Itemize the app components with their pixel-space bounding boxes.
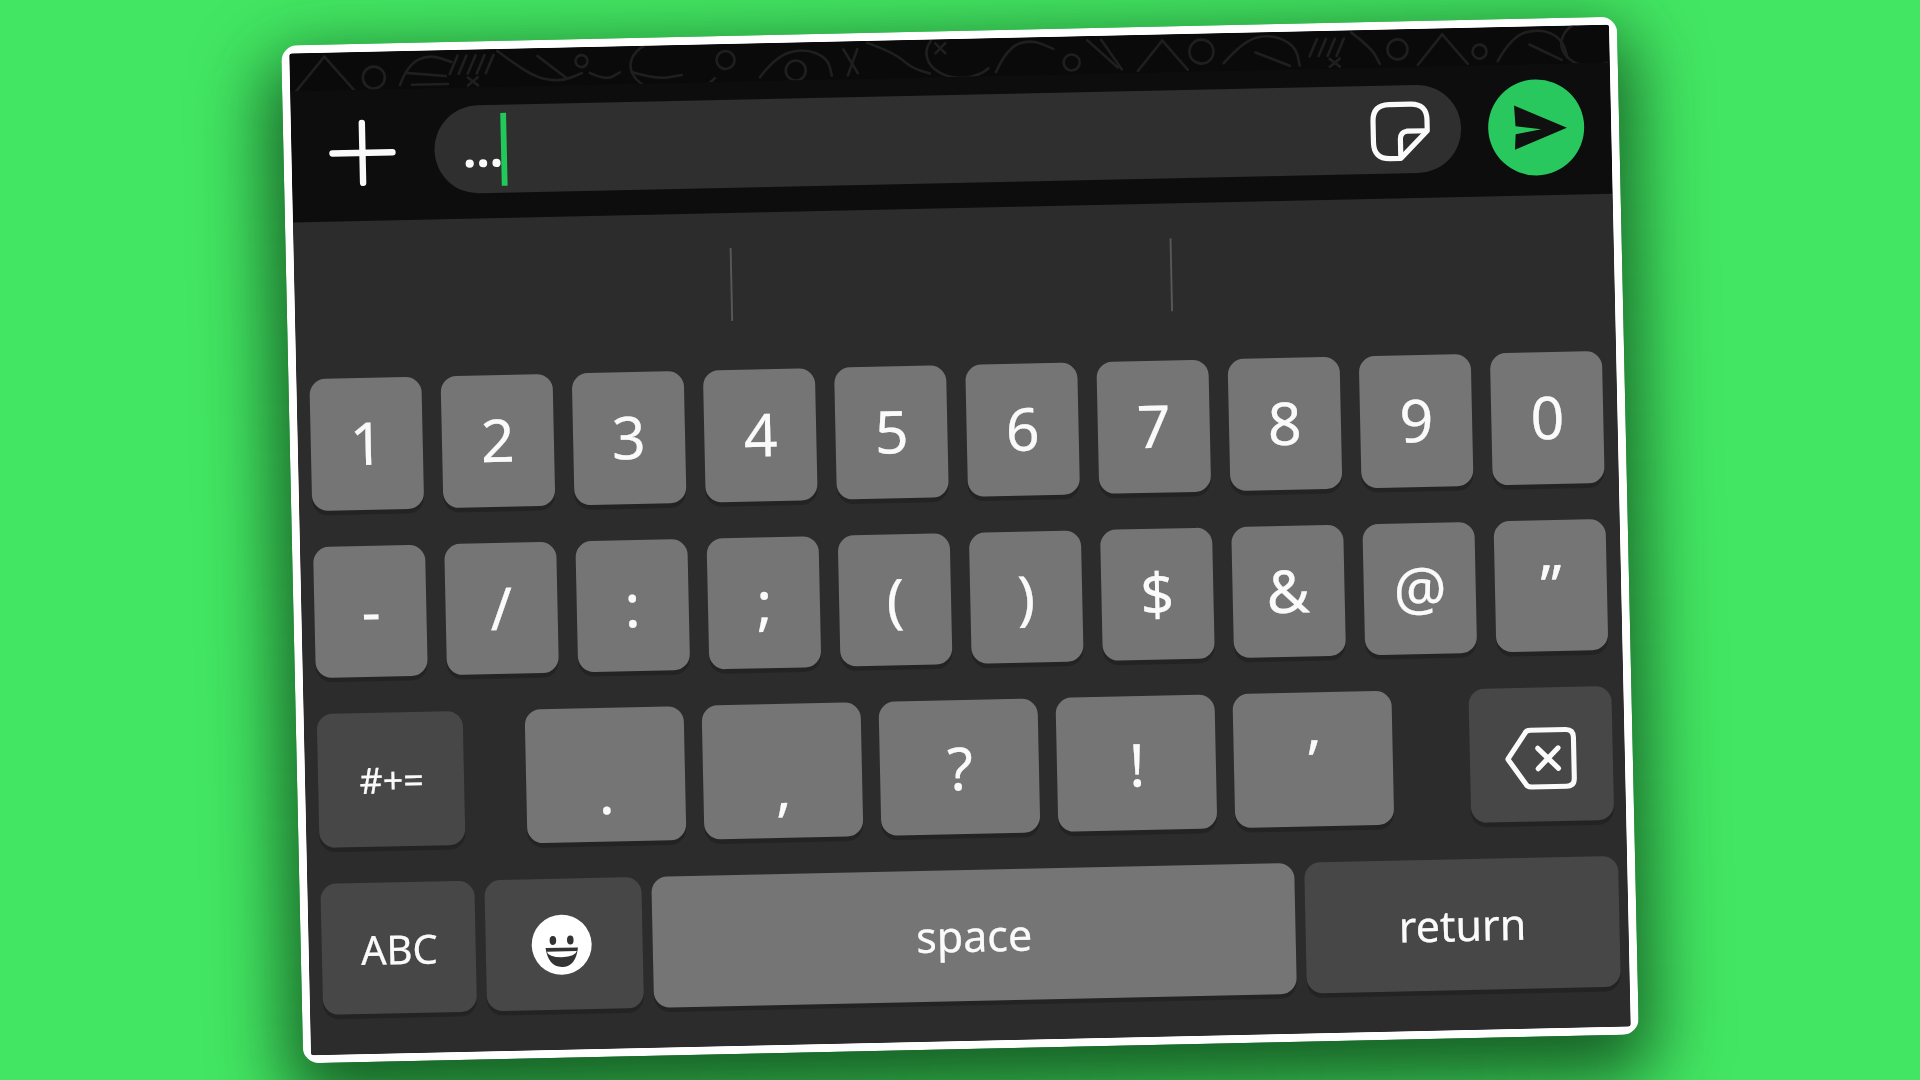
button[interactable]: &: [1231, 525, 1346, 658]
button[interactable]: Emoji: [484, 877, 644, 1011]
staticText: /: [489, 567, 513, 647]
button[interactable]: @: [1363, 522, 1478, 655]
staticText: space: [915, 904, 1033, 966]
button[interactable]: space: [651, 863, 1297, 1008]
button[interactable]: 0: [1490, 351, 1605, 485]
button[interactable]: Attach: [324, 114, 401, 192]
button[interactable]: #+=: [317, 711, 465, 848]
staticText: 5: [874, 390, 909, 471]
staticText: ,: [774, 747, 792, 827]
button[interactable]: 2: [440, 374, 555, 508]
button[interactable]: ABC: [320, 881, 477, 1015]
staticText: ): [1016, 555, 1036, 636]
staticText: 1: [349, 401, 385, 482]
button[interactable]: 3: [571, 371, 686, 505]
button[interactable]: ,: [701, 702, 863, 840]
staticText: ”: [1539, 544, 1563, 624]
staticText: (: [885, 558, 905, 639]
button[interactable]: 5: [834, 365, 949, 500]
button[interactable]: 4: [703, 368, 818, 502]
staticText: 4: [743, 393, 778, 474]
button[interactable]: (: [838, 533, 953, 667]
staticText: -: [360, 570, 381, 650]
staticText: return: [1398, 894, 1527, 956]
staticText: !: [1128, 723, 1146, 803]
button[interactable]: $: [1100, 527, 1215, 661]
staticText: ?: [946, 727, 974, 807]
staticText: 8: [1267, 382, 1302, 462]
staticText: ABC: [360, 920, 438, 976]
button[interactable]: Message input: [433, 84, 1462, 194]
button[interactable]: :: [575, 539, 690, 672]
button[interactable]: ;: [707, 536, 822, 669]
button[interactable]: Sticker: [1356, 88, 1442, 174]
staticText: ’: [1307, 719, 1320, 799]
button[interactable]: 1: [309, 377, 424, 511]
button[interactable]: 6: [965, 362, 1080, 497]
staticText: :: [623, 564, 641, 644]
staticText: 6: [1005, 387, 1040, 468]
button[interactable]: ”: [1494, 519, 1608, 652]
staticText: 3: [611, 396, 646, 476]
staticText: $: [1139, 552, 1175, 633]
staticText: .: [597, 751, 615, 831]
button[interactable]: 9: [1359, 354, 1474, 488]
button[interactable]: Backspace: [1468, 686, 1614, 823]
button[interactable]: ): [969, 530, 1084, 664]
button[interactable]: 8: [1227, 357, 1342, 491]
button[interactable]: -: [313, 545, 428, 678]
button[interactable]: Send: [1487, 78, 1585, 176]
staticText: #+=: [358, 755, 424, 805]
staticText: @: [1392, 546, 1448, 628]
button[interactable]: ’: [1232, 691, 1394, 828]
staticText: &: [1265, 549, 1311, 630]
button[interactable]: .: [525, 706, 686, 843]
staticText: ;: [755, 561, 773, 641]
staticText: 7: [1136, 384, 1171, 465]
button[interactable]: !: [1055, 694, 1217, 832]
button[interactable]: /: [444, 542, 559, 675]
staticText: 2: [480, 399, 515, 479]
button[interactable]: 7: [1096, 360, 1211, 494]
button[interactable]: ?: [878, 698, 1040, 836]
button[interactable]: return: [1304, 856, 1621, 994]
staticText: 9: [1399, 379, 1434, 459]
staticText: 0: [1530, 376, 1565, 457]
